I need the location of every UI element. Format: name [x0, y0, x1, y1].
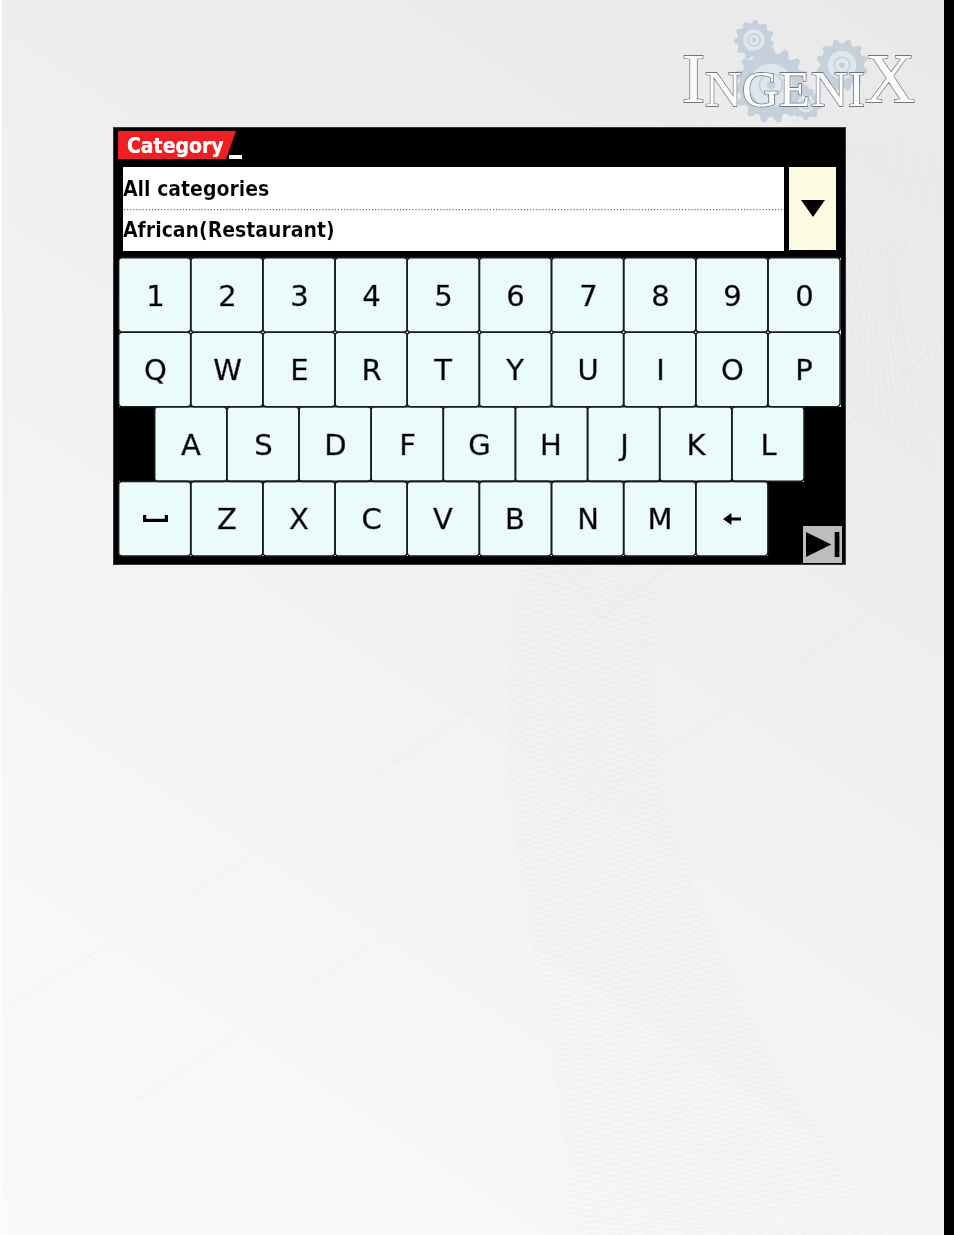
- button[interactable]: W: [191, 332, 263, 407]
- button[interactable]: Q: [119, 332, 191, 407]
- staticText: 7: [579, 279, 598, 313]
- staticText: 8: [651, 279, 670, 313]
- staticText: W: [213, 353, 242, 387]
- button[interactable]: A: [155, 407, 227, 482]
- button[interactable]: Y: [479, 332, 551, 407]
- button[interactable]: K: [660, 407, 732, 482]
- staticText: 9: [723, 279, 742, 313]
- staticText: F: [399, 428, 416, 462]
- staticText: N: [811, 61, 848, 117]
- staticText: 4: [362, 279, 381, 313]
- staticText: 3: [290, 279, 309, 313]
- staticText: 8: [651, 279, 670, 313]
- button[interactable]: B: [479, 481, 551, 556]
- button[interactable]: E: [263, 332, 335, 407]
- staticText: C: [361, 502, 382, 536]
- staticText: B: [505, 502, 525, 536]
- button[interactable]: C: [335, 481, 407, 556]
- button[interactable]: N: [552, 481, 624, 556]
- staticText: G: [468, 428, 491, 462]
- staticText: A: [181, 428, 201, 462]
- button[interactable]: F: [371, 407, 443, 482]
- staticText: Y: [506, 353, 524, 387]
- staticText: 6: [506, 279, 525, 313]
- button[interactable]: Backspace: [696, 481, 768, 556]
- staticText: N: [577, 502, 599, 536]
- staticText: I: [656, 353, 665, 387]
- button[interactable]: H: [515, 407, 587, 482]
- staticText: 0: [795, 279, 814, 313]
- staticText: X: [289, 502, 309, 536]
- staticText: X: [289, 502, 309, 536]
- staticText: B: [505, 502, 525, 536]
- button[interactable]: V: [407, 481, 479, 556]
- staticText: I: [682, 41, 705, 117]
- button[interactable]: 2: [191, 258, 263, 333]
- staticText: 7: [579, 279, 598, 313]
- button[interactable]: 0: [768, 258, 840, 333]
- button[interactable]: I: [624, 332, 696, 407]
- staticText: L: [760, 428, 777, 462]
- staticText: I: [848, 61, 865, 117]
- button[interactable]: X: [263, 481, 335, 556]
- staticText: 2: [218, 279, 237, 313]
- staticText: G: [468, 428, 491, 462]
- button[interactable]: 4: [335, 258, 407, 333]
- button[interactable]: Space: [119, 481, 191, 556]
- staticText: 3: [290, 279, 309, 313]
- staticText: P: [795, 353, 813, 387]
- button[interactable]: O: [696, 332, 768, 407]
- staticText: N: [705, 61, 742, 117]
- button[interactable]: 5: [407, 258, 479, 333]
- staticText: J: [620, 428, 629, 462]
- button[interactable]: U: [552, 332, 624, 407]
- button[interactable]: 8: [624, 258, 696, 333]
- staticText: 1: [146, 279, 165, 313]
- button[interactable]: J: [588, 407, 660, 482]
- button[interactable]: Category: [118, 131, 236, 159]
- button[interactable]: P: [768, 332, 840, 407]
- staticText: P: [795, 353, 813, 387]
- button[interactable]: Open category dropdown: [789, 167, 836, 250]
- staticText: O: [721, 353, 744, 387]
- button[interactable]: D: [299, 407, 371, 482]
- button[interactable]: S: [227, 407, 299, 482]
- button[interactable]: 6: [479, 258, 551, 333]
- button[interactable]: Z: [191, 481, 263, 556]
- button[interactable]: G: [443, 407, 515, 482]
- staticText: African(Restaurant): [123, 218, 335, 242]
- staticText: J: [620, 428, 629, 462]
- button[interactable]: 3: [263, 258, 335, 333]
- button[interactable]: L: [732, 407, 804, 482]
- button[interactable]: Next: [803, 526, 842, 563]
- staticText: X: [865, 41, 915, 117]
- staticText: X: [865, 41, 915, 117]
- staticText: W: [213, 353, 242, 387]
- button[interactable]: All categories: [123, 167, 784, 251]
- button[interactable]: R: [335, 332, 407, 407]
- button[interactable]: 7: [552, 258, 624, 333]
- staticText: U: [577, 353, 599, 387]
- staticText: I: [682, 41, 705, 117]
- button[interactable]: 9: [696, 258, 768, 333]
- staticText: 5: [434, 279, 453, 313]
- staticText: E: [290, 353, 309, 387]
- staticText: F: [399, 428, 416, 462]
- staticText: R: [361, 353, 382, 387]
- staticText: E: [779, 61, 811, 117]
- staticText: I: [656, 353, 665, 387]
- button[interactable]: T: [407, 332, 479, 407]
- staticText: R: [361, 353, 382, 387]
- button[interactable]: 1: [119, 258, 191, 333]
- staticText: M: [647, 502, 673, 536]
- button[interactable]: M: [624, 481, 696, 556]
- staticText: C: [361, 502, 382, 536]
- staticText: H: [540, 428, 562, 462]
- staticText: 1: [146, 279, 165, 313]
- staticText: N: [577, 502, 599, 536]
- staticText: 0: [795, 279, 814, 313]
- staticText: Q: [144, 353, 167, 387]
- staticText: E: [779, 61, 811, 117]
- staticText: U: [577, 353, 599, 387]
- staticText: K: [686, 428, 706, 462]
